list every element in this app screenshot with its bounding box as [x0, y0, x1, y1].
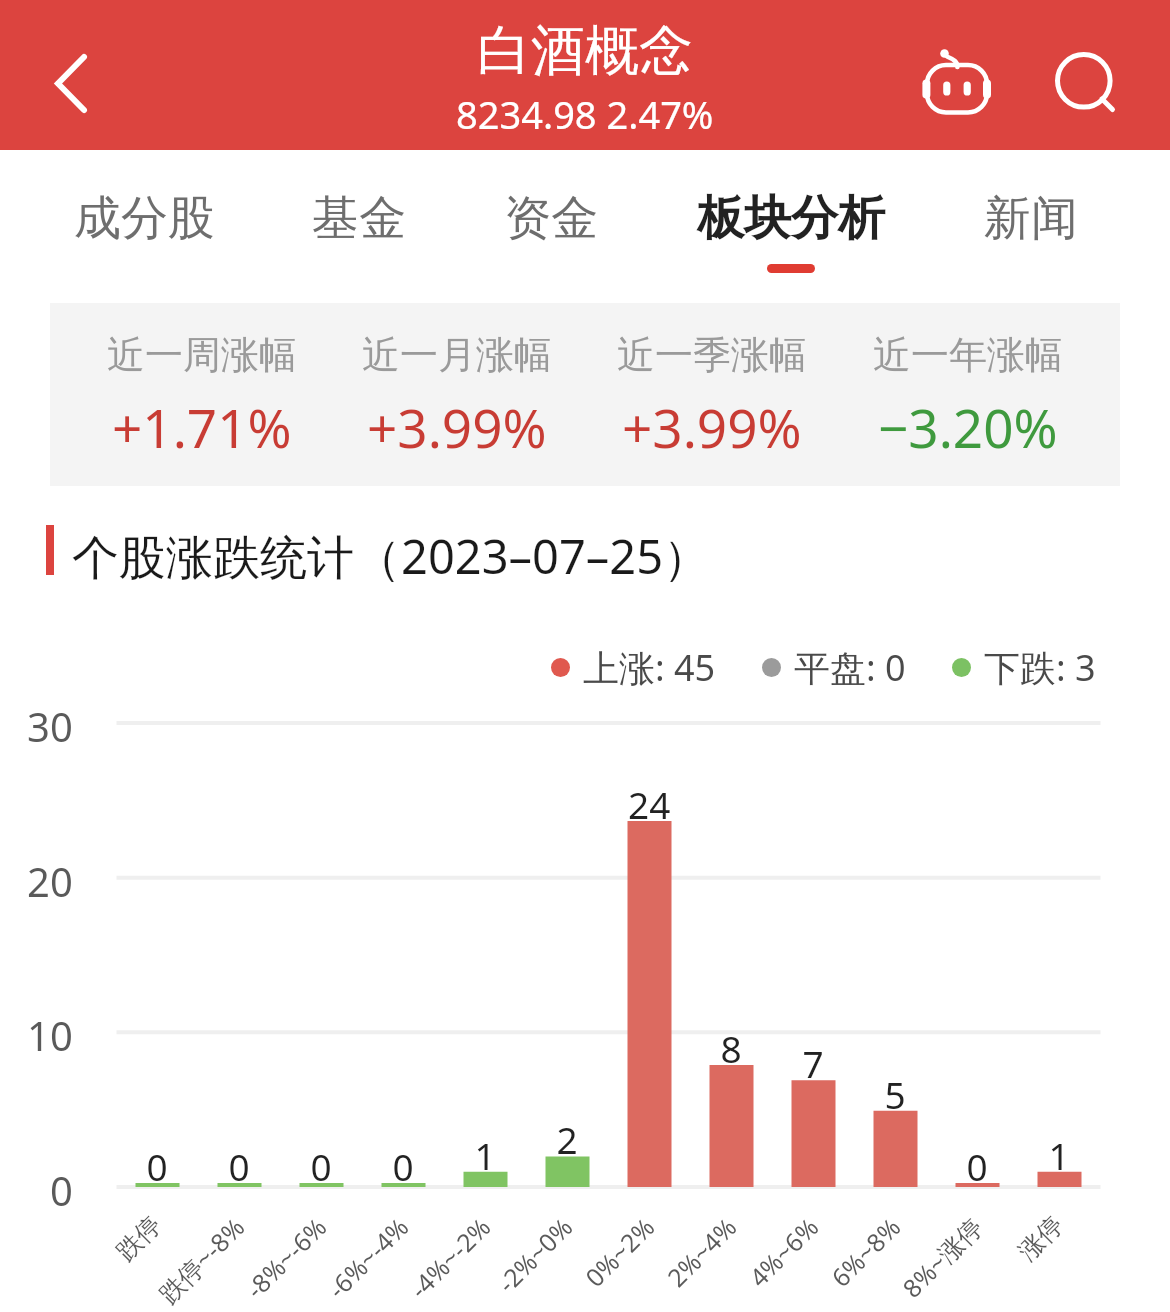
staticText: 新闻 [984, 189, 1078, 248]
staticText: 资金 [504, 189, 598, 248]
button[interactable]: 资金 [478, 168, 624, 286]
button[interactable] [50, 303, 1120, 486]
button[interactable]: 新闻 [958, 168, 1104, 286]
staticText: 近一月涨幅 [362, 331, 552, 379]
staticText: 近一年涨幅 [873, 331, 1063, 379]
staticText: 8234.98 2.47% [456, 88, 714, 140]
button[interactable]: Search [1030, 32, 1122, 124]
button[interactable]: 成分股 [48, 168, 241, 286]
staticText: 个股涨跌统计（2023–07–25） [72, 524, 711, 588]
staticText: 近一周涨幅 [107, 331, 297, 379]
button[interactable]: 上涨: 45 [551, 643, 716, 692]
staticText: 成分股 [74, 189, 215, 248]
button[interactable]: 下跌: 3 [952, 643, 1096, 692]
staticText: +3.99% [367, 391, 547, 463]
staticText: 下跌: 3 [984, 643, 1096, 692]
staticText: 板块分析 [697, 189, 885, 248]
button[interactable]: 平盘: 0 [762, 643, 906, 692]
staticText: −3.20% [878, 391, 1058, 463]
staticText: +3.99% [622, 391, 802, 463]
staticText: 上涨: 45 [583, 643, 716, 692]
staticText: +1.71% [112, 391, 292, 463]
staticText: 基金 [312, 189, 406, 248]
button[interactable]: AI assistant [911, 37, 1003, 129]
button[interactable]: 板块分析 [671, 168, 911, 286]
button[interactable]: Back [25, 37, 117, 129]
staticText: 近一季涨幅 [617, 331, 807, 379]
button[interactable]: 基金 [286, 168, 432, 286]
staticText: 白酒概念 [477, 17, 693, 85]
staticText: 平盘: 0 [794, 643, 906, 692]
